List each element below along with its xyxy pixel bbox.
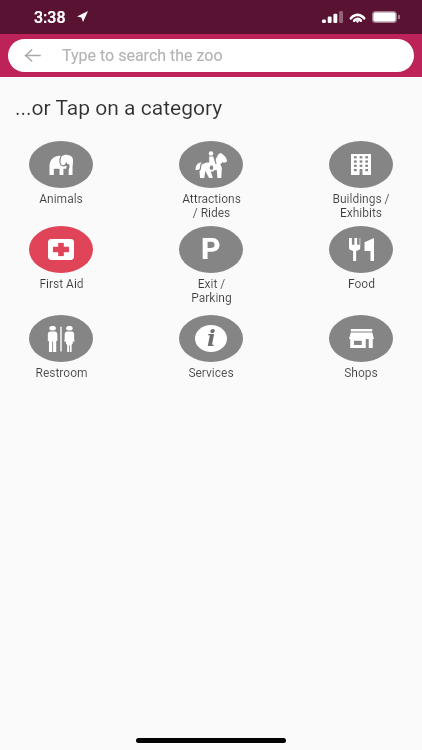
staticText: P <box>201 231 221 266</box>
staticText: Food <box>348 277 375 291</box>
staticText: Services <box>188 366 234 380</box>
staticText: Attractions / Rides <box>182 192 241 220</box>
staticText: ...or Tap on a category <box>15 96 223 121</box>
button[interactable]: First Aid <box>29 226 93 291</box>
staticText: Shops <box>344 366 378 380</box>
staticText: i <box>207 324 216 351</box>
button[interactable]: Attractions / Rides <box>179 141 243 220</box>
button[interactable]: Animals <box>29 141 93 206</box>
button[interactable]: i <box>179 315 243 380</box>
button[interactable]: Food <box>329 226 393 291</box>
button[interactable]: Back <box>8 39 414 72</box>
staticText: Animals <box>39 192 83 206</box>
button[interactable]: P <box>179 226 243 305</box>
staticText: Type to search the zoo <box>62 46 223 65</box>
staticText: 3:38 <box>34 8 66 27</box>
button[interactable]: Shops <box>329 315 393 380</box>
button[interactable]: Buildings / Exhibits <box>329 141 393 220</box>
other: Back <box>25 49 40 62</box>
staticText: First Aid <box>39 277 84 291</box>
button[interactable]: Restroom <box>29 315 93 380</box>
staticText: Buildings / Exhibits <box>332 192 390 220</box>
staticText: Restroom <box>35 366 88 380</box>
staticText: Exit / Parking <box>191 277 232 305</box>
